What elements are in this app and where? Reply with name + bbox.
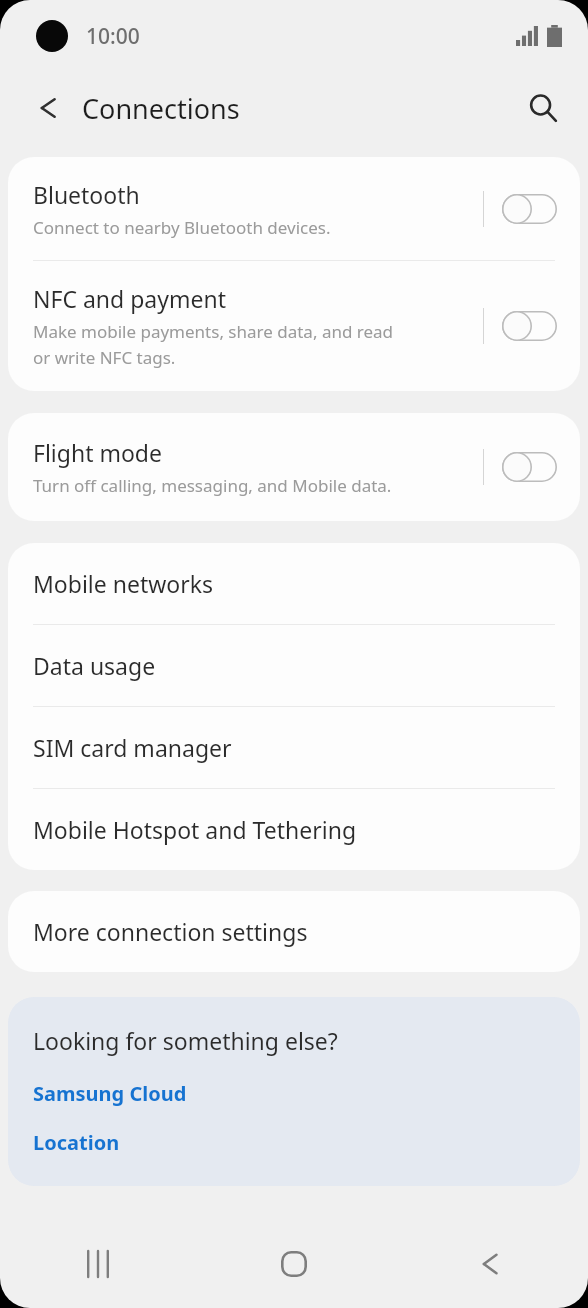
staticText: Make mobile payments, share data, and re… (33, 320, 394, 369)
button[interactable]: Bluetooth switch, off (500, 189, 558, 229)
button[interactable]: Back (392, 1220, 588, 1308)
staticText: Looking for something else? (33, 1025, 338, 1056)
staticText: 10:00 (86, 22, 140, 51)
button[interactable]: Flight mode (8, 413, 580, 521)
button[interactable]: Recent apps (0, 1220, 196, 1308)
button[interactable]: Mobile networks (8, 543, 580, 624)
button[interactable]: NFC and payment switch, off (500, 306, 558, 346)
button[interactable]: Samsung Cloud (33, 1080, 187, 1107)
staticText: Data usage (33, 650, 156, 681)
staticText: Bluetooth (33, 179, 140, 210)
staticText: Mobile networks (33, 568, 214, 599)
staticText: Flight mode (33, 437, 162, 468)
button[interactable]: More connection settings (8, 891, 580, 972)
button[interactable]: Flight mode switch, off (500, 447, 558, 487)
staticText: SIM card manager (33, 732, 232, 763)
staticText: Connections (82, 90, 240, 127)
button[interactable]: SIM card manager (8, 707, 580, 788)
button[interactable]: Bluetooth (8, 157, 580, 260)
staticText: NFC and payment (33, 283, 226, 314)
staticText: More connection settings (33, 916, 308, 947)
button[interactable]: Search (516, 81, 570, 135)
button[interactable]: Data usage (8, 625, 580, 706)
button[interactable]: Location (33, 1129, 120, 1156)
button[interactable]: Mobile Hotspot and Tethering (8, 789, 580, 870)
button[interactable]: NFC and payment (8, 261, 580, 391)
staticText: Mobile Hotspot and Tethering (33, 814, 357, 845)
staticText: Connect to nearby Bluetooth devices. (33, 216, 331, 239)
staticText: Turn off calling, messaging, and Mobile … (33, 474, 392, 497)
button[interactable]: Navigate up (22, 82, 74, 134)
button[interactable]: Home (196, 1220, 392, 1308)
staticText: Samsung Cloud (33, 1080, 187, 1107)
staticText: Location (33, 1129, 120, 1156)
